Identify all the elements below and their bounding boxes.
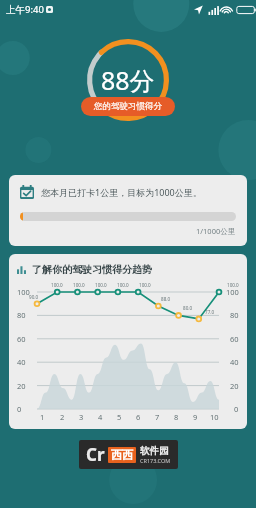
staticText: 您的驾驶习惯得分: [94, 101, 162, 112]
staticText: 6: [136, 412, 141, 422]
staticText: 5: [117, 412, 122, 422]
staticText: 100.0: [73, 282, 85, 288]
staticText: 60: [17, 334, 33, 344]
staticText: 0: [17, 404, 33, 414]
staticText: 西西: [111, 448, 133, 462]
button[interactable]: 您的驾驶习惯得分: [81, 97, 175, 116]
staticText: 10: [210, 412, 219, 422]
staticText: 1: [40, 412, 45, 422]
staticText: 80: [230, 310, 239, 320]
staticText: 100: [17, 287, 33, 297]
staticText: 100.0: [51, 282, 63, 288]
staticText: 20: [17, 381, 33, 391]
staticText: 80: [17, 310, 33, 320]
staticText: 90.0: [29, 294, 39, 300]
staticText: 2: [60, 412, 65, 422]
staticText: 88.0: [161, 296, 171, 302]
staticText: 了解你的驾驶习惯得分趋势: [32, 263, 152, 276]
other: Check-in calendar: [20, 185, 34, 199]
staticText: 3: [79, 412, 84, 422]
staticText: 40: [17, 357, 33, 367]
staticText: 0: [234, 404, 239, 414]
staticText: Cr: [86, 443, 105, 466]
staticText: 9: [193, 412, 198, 422]
button[interactable]: 了解你的驾驶习惯得分趋势: [9, 254, 247, 429]
staticText: 20: [230, 381, 239, 391]
staticText: 100.0: [139, 282, 151, 288]
staticText: CR173.COM: [140, 457, 171, 464]
staticText: 100.0: [95, 282, 107, 288]
staticText: 软件园: [140, 445, 169, 457]
staticText: 77.0: [205, 309, 215, 315]
staticText: 4: [98, 412, 103, 422]
staticText: 100: [226, 287, 239, 297]
staticText: 100.0: [117, 282, 129, 288]
staticText: 40: [230, 357, 239, 367]
staticText: 1/1000公里: [196, 226, 236, 236]
staticText: 8: [174, 412, 179, 422]
staticText: 88分: [101, 63, 155, 97]
staticText: 100.0: [227, 282, 239, 288]
staticText: 7: [155, 412, 160, 422]
staticText: 您本月已打卡1公里，目标为1000公里。: [41, 186, 202, 198]
staticText: 上午9:40: [6, 3, 44, 16]
staticText: 80.0: [183, 305, 193, 311]
staticText: 60: [230, 334, 239, 344]
button[interactable]: Check-in calendar: [9, 175, 247, 246]
